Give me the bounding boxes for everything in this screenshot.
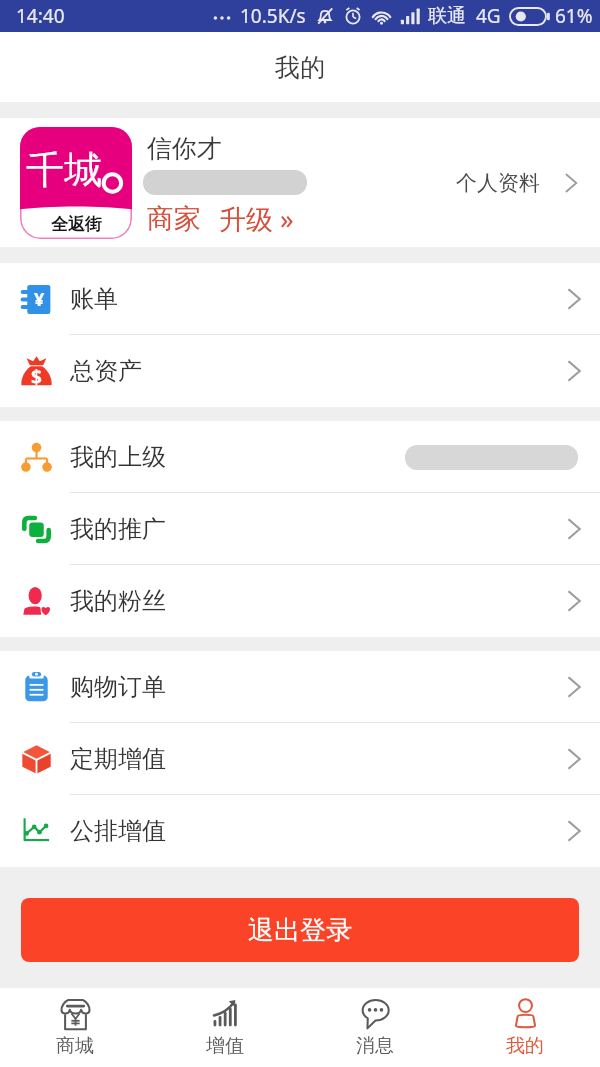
- staticText: 联通: [428, 4, 466, 28]
- staticText: 我的粉丝: [70, 586, 166, 616]
- button[interactable]: 我的: [450, 988, 600, 1067]
- staticText: 信你才: [147, 133, 222, 164]
- staticText: 千城: [26, 146, 102, 194]
- staticText: 我的推广: [70, 514, 166, 544]
- button[interactable]: 消息: [300, 988, 450, 1067]
- button[interactable]: 公排增值: [0, 795, 600, 867]
- staticText: 4G: [476, 3, 501, 29]
- staticText: 定期增值: [70, 744, 166, 774]
- staticText: 升级 »: [219, 200, 294, 237]
- button[interactable]: 我的推广: [0, 493, 600, 565]
- staticText: 14:40: [16, 3, 65, 29]
- staticText: 公排增值: [70, 816, 166, 846]
- button[interactable]: 我的粉丝: [0, 565, 600, 637]
- button[interactable]: 退出登录: [21, 898, 579, 962]
- button[interactable]: $: [0, 335, 600, 407]
- staticText: 总资产: [70, 356, 142, 386]
- button[interactable]: 我的上级: [0, 421, 600, 493]
- staticText: 消息: [356, 1034, 394, 1058]
- staticText: ¥: [34, 287, 45, 312]
- button[interactable]: 千城: [0, 118, 600, 247]
- staticText: 商家: [147, 202, 201, 236]
- staticText: 商城: [56, 1034, 94, 1058]
- staticText: 我的: [275, 52, 325, 83]
- button[interactable]: ¥: [0, 263, 600, 335]
- button[interactable]: 个人资料: [456, 118, 600, 247]
- staticText: 我的上级: [70, 442, 166, 472]
- staticText: 个人资料: [456, 170, 540, 196]
- staticText: 退出登录: [248, 914, 352, 947]
- staticText: $: [31, 364, 42, 390]
- staticText: 61%: [555, 3, 593, 29]
- button[interactable]: 商城: [0, 988, 150, 1067]
- staticText: 我的: [506, 1034, 544, 1058]
- button[interactable]: 定期增值: [0, 723, 600, 795]
- staticText: 全返街: [51, 214, 102, 235]
- staticText: 增值: [206, 1034, 244, 1058]
- button[interactable]: 增值: [150, 988, 300, 1067]
- staticText: 账单: [70, 284, 118, 314]
- staticText: 购物订单: [70, 672, 166, 702]
- button[interactable]: 购物订单: [0, 651, 600, 723]
- staticText: 10.5K/s: [240, 3, 306, 29]
